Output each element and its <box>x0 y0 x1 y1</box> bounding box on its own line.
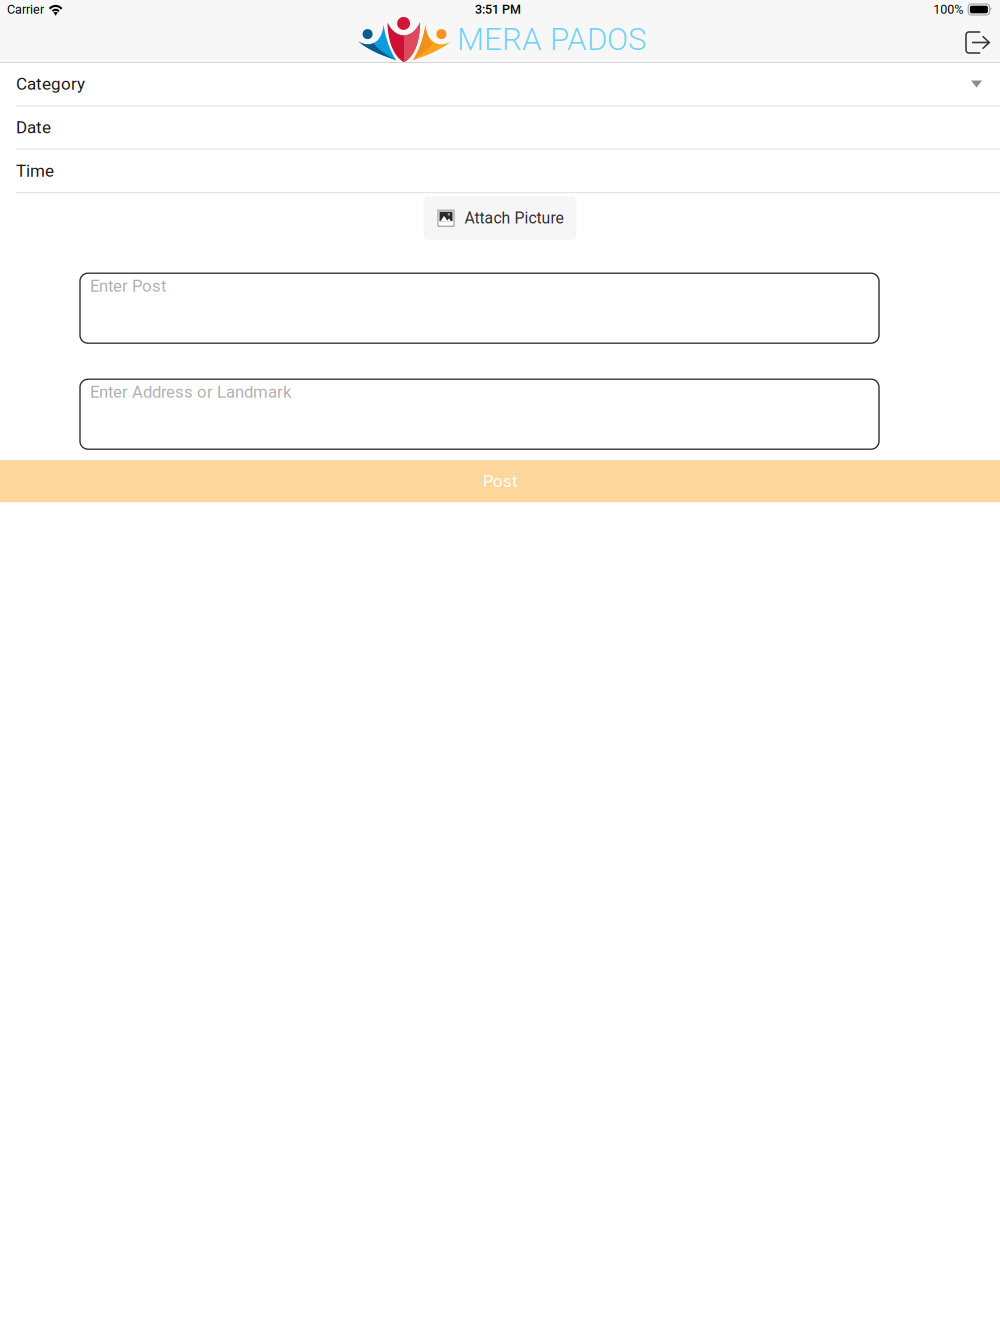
button[interactable]: Attach Picture <box>423 196 576 240</box>
staticText: MERA PADOS <box>457 21 646 57</box>
staticText: Category <box>16 74 85 94</box>
button[interactable]: Date <box>0 106 1000 150</box>
staticText: Enter Address or Landmark <box>90 382 291 402</box>
staticText: Carrier <box>7 2 44 17</box>
staticText: Enter Post <box>90 276 166 296</box>
staticText: Post <box>483 471 517 491</box>
staticText: Time <box>16 161 54 181</box>
staticText: 100% <box>933 2 963 17</box>
button[interactable]: Log out <box>940 17 1000 63</box>
staticText: Attach Picture <box>464 209 563 227</box>
button[interactable]: Category <box>0 63 1000 106</box>
button[interactable]: Post <box>0 460 1000 502</box>
staticText: Date <box>16 117 51 137</box>
staticText: 3:51 PM <box>475 2 521 17</box>
button[interactable]: Time <box>0 150 1000 193</box>
